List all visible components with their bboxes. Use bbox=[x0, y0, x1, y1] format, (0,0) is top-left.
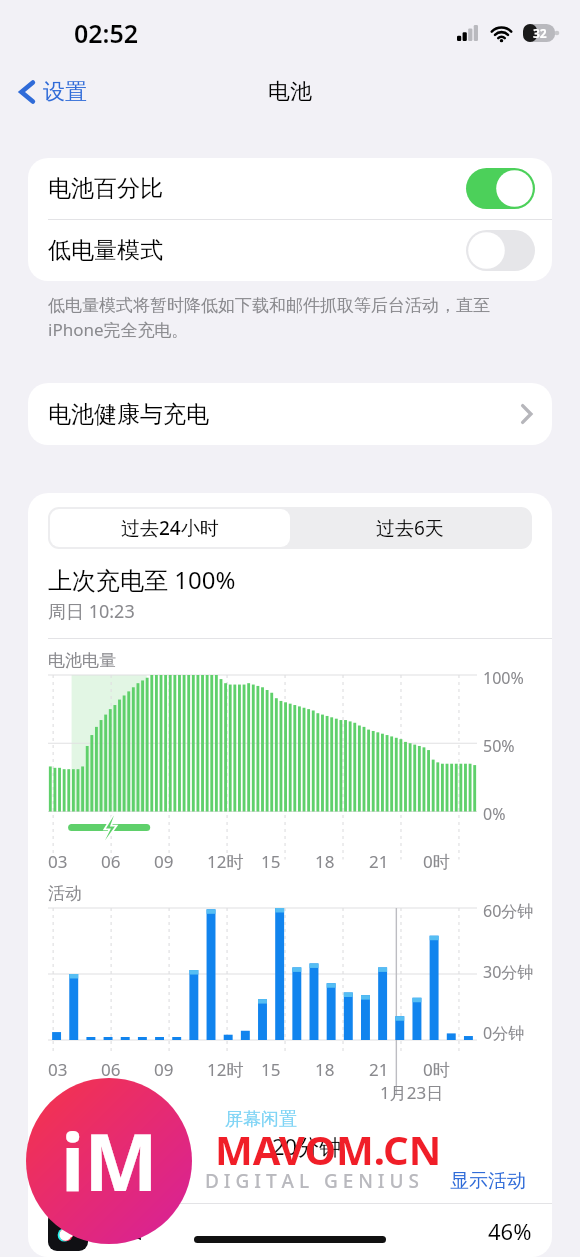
staticText: 低电量模式将暂时降低如下载和邮件抓取等后台活动，直至 iPhone完全充电。 bbox=[48, 295, 490, 341]
staticText: 设置 bbox=[43, 78, 87, 106]
staticText: 电池电量 bbox=[48, 650, 116, 671]
staticText: 0% bbox=[483, 803, 506, 825]
staticText: 12时 bbox=[207, 1058, 244, 1081]
staticText: D I G I T A L G E N I U S bbox=[205, 1168, 419, 1194]
staticText: 100% bbox=[483, 667, 524, 689]
staticText: 06 bbox=[101, 1058, 121, 1081]
staticText: 15 bbox=[261, 850, 281, 873]
staticText: 03 bbox=[48, 1058, 68, 1081]
staticText: 32 bbox=[533, 25, 547, 41]
staticText: 03 bbox=[48, 850, 68, 873]
staticText: 过去6天 bbox=[376, 515, 444, 541]
button[interactable]: 过去24小时 bbox=[50, 509, 290, 547]
button[interactable]: 抖音 bbox=[28, 1204, 552, 1257]
staticText: 电池 bbox=[268, 78, 312, 106]
staticText: 20分钟 bbox=[272, 1131, 342, 1161]
staticText: 周日 10:23 bbox=[48, 599, 135, 624]
staticText: 屏幕闲置 bbox=[225, 1108, 297, 1131]
staticText: 06 bbox=[101, 850, 121, 873]
staticText: 12时 bbox=[207, 850, 244, 873]
staticText: 0时 bbox=[423, 850, 450, 873]
staticText: 活动 bbox=[48, 883, 82, 904]
staticText: 09 bbox=[154, 850, 174, 873]
staticText: 21 bbox=[369, 1058, 389, 1081]
staticText: 抖音 bbox=[102, 1217, 146, 1245]
staticText: 60分钟 bbox=[483, 900, 534, 922]
staticText: 21 bbox=[369, 850, 389, 873]
staticText: 02:52 bbox=[74, 16, 139, 50]
staticText: 0分钟 bbox=[483, 1022, 525, 1044]
staticText: 30分钟 bbox=[483, 961, 534, 983]
staticText: 09 bbox=[154, 1058, 174, 1081]
staticText: 15 bbox=[261, 1058, 281, 1081]
staticText: 过去24小时 bbox=[121, 515, 219, 541]
button[interactable]: 电池百分比 bbox=[28, 158, 552, 219]
button[interactable]: 低电量模式 bbox=[28, 220, 552, 281]
staticText: 18 bbox=[315, 1058, 335, 1081]
staticText: 1月23日 bbox=[380, 1081, 444, 1104]
button[interactable]: 过去6天 bbox=[290, 509, 530, 547]
button[interactable]: 电池健康与充电 bbox=[28, 383, 552, 445]
button[interactable]: 显示活动 bbox=[446, 1165, 530, 1197]
staticText: 电池健康与充电 bbox=[48, 400, 209, 429]
button[interactable]: 设置 bbox=[16, 74, 91, 110]
staticText: 电池百分比 bbox=[48, 174, 163, 203]
staticText: 50% bbox=[483, 735, 515, 757]
staticText: iM bbox=[61, 1108, 158, 1214]
staticText: 0时 bbox=[423, 1058, 450, 1081]
staticText: 18 bbox=[315, 850, 335, 873]
staticText: 低电量模式 bbox=[48, 236, 163, 265]
staticText: 上次充电至 100% bbox=[48, 563, 236, 596]
staticText: 46% bbox=[488, 1216, 532, 1246]
staticText: MAVOM.CN bbox=[215, 1122, 442, 1176]
